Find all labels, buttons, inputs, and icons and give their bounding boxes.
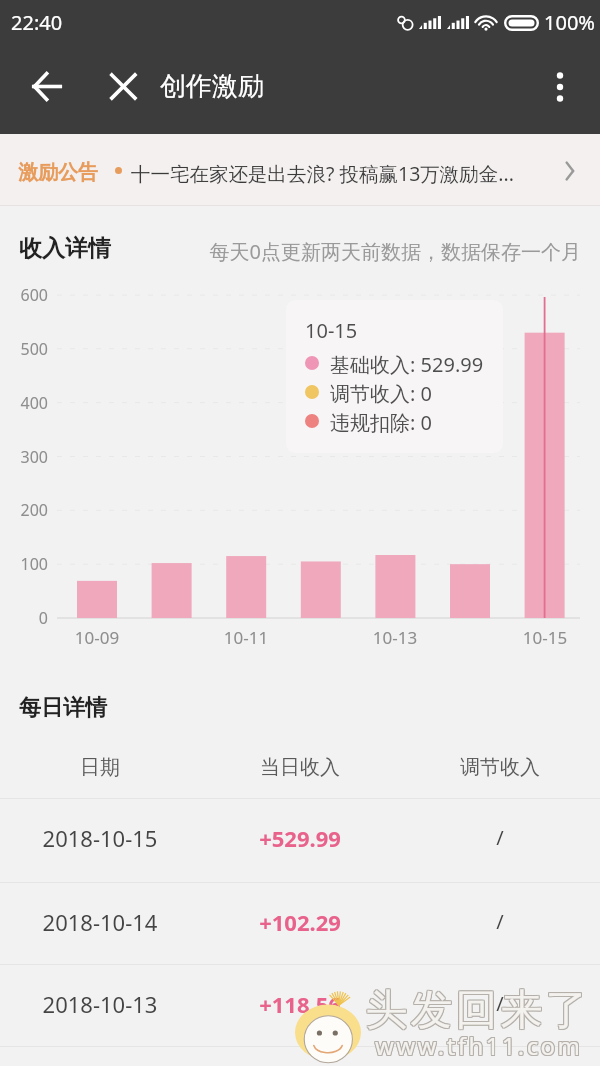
- staticText: 头发回来了: [364, 983, 589, 1036]
- staticText: www.tfh11.com: [374, 1028, 582, 1061]
- staticText: www.tfh11.com: [376, 1029, 584, 1062]
- staticText: /: [420, 824, 580, 851]
- staticText: www.tfh11.com: [374, 1030, 582, 1063]
- staticText: 日期: [20, 755, 180, 780]
- staticText: 400: [0, 392, 48, 414]
- button[interactable]: 2018-10-14: [0, 882, 600, 965]
- staticText: 500: [0, 338, 48, 360]
- staticText: +118.56: [220, 989, 380, 1019]
- staticText: 22:40: [11, 9, 63, 36]
- button[interactable]: 激励公告: [0, 134, 600, 206]
- staticText: 10-11: [206, 626, 286, 649]
- staticText: /: [420, 908, 580, 935]
- staticText: 100: [0, 553, 48, 575]
- button[interactable]: 2018-10-15: [0, 798, 600, 881]
- staticText: 10-15: [505, 626, 585, 649]
- staticText: 头发回来了: [363, 983, 588, 1036]
- staticText: 2018-10-15: [20, 823, 180, 853]
- staticText: 头发回来了: [363, 984, 588, 1037]
- staticText: www.tfh11.com: [375, 1028, 583, 1061]
- staticText: +529.99: [220, 823, 380, 853]
- staticText: www.tfh11.com: [376, 1030, 584, 1063]
- staticText: 收入详情: [19, 234, 111, 263]
- staticText: 2018-10-14: [20, 907, 180, 937]
- staticText: /: [420, 990, 580, 1017]
- staticText: www.tfh11.com: [374, 1029, 582, 1062]
- staticText: www.tfh11.com: [375, 1030, 583, 1063]
- staticText: 头发回来了: [365, 983, 590, 1036]
- staticText: 0: [0, 607, 48, 629]
- staticText: 十一宅在家还是出去浪? 投稿赢13万激励金...: [131, 160, 515, 187]
- staticText: 10-09: [57, 626, 137, 649]
- staticText: 10-13: [355, 626, 435, 649]
- staticText: 300: [0, 446, 48, 468]
- staticText: 创作激励: [160, 70, 264, 103]
- staticText: 200: [0, 499, 48, 521]
- staticText: 头发回来了: [363, 985, 588, 1038]
- staticText: 基础收入: 529.99: [330, 351, 484, 378]
- staticText: www.tfh11.com: [376, 1028, 584, 1061]
- staticText: 调节收入: 0: [330, 380, 432, 407]
- staticText: 600: [0, 284, 48, 306]
- staticText: 每天0点更新两天前数据，数据保存一个月: [181, 238, 581, 265]
- staticText: 违规扣除: 0: [330, 409, 432, 436]
- button[interactable]: Back: [21, 61, 73, 113]
- button[interactable]: More options: [538, 65, 582, 109]
- staticText: 调节收入: [420, 755, 580, 780]
- button[interactable]: Close: [100, 63, 146, 109]
- staticText: 100%: [544, 9, 595, 36]
- staticText: 2018-10-13: [20, 989, 180, 1019]
- staticText: +102.29: [220, 907, 380, 937]
- staticText: 10-15: [305, 317, 358, 344]
- staticText: 头发回来了: [365, 985, 590, 1038]
- staticText: 每日详情: [19, 694, 107, 722]
- button[interactable]: 2018-10-13: [0, 964, 600, 1047]
- staticText: 头发回来了: [365, 984, 590, 1037]
- staticText: 头发回来了: [364, 985, 589, 1038]
- staticText: www.tfh11.com: [375, 1029, 583, 1062]
- staticText: 激励公告: [18, 160, 98, 185]
- staticText: 当日收入: [220, 755, 380, 780]
- staticText: 头发回来了: [364, 984, 589, 1037]
